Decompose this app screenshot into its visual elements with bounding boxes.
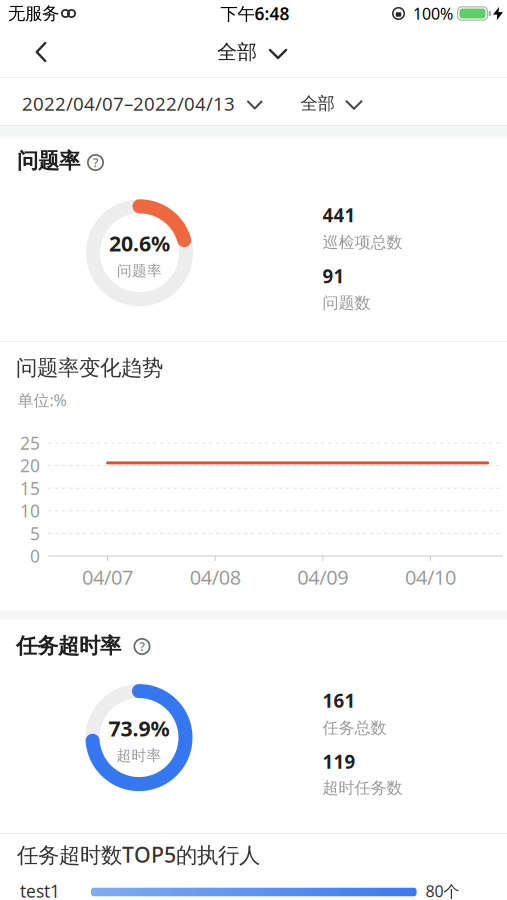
staticText: 问题数: [322, 293, 370, 313]
staticText: 0: [30, 544, 40, 567]
staticText: 100%: [413, 3, 453, 24]
staticText: 任务超时数TOP5的执行人: [17, 840, 260, 869]
button[interactable]: 返回: [25, 31, 57, 73]
staticText: 5: [30, 522, 40, 545]
staticText: 04/09: [297, 564, 348, 590]
button[interactable]: 全部: [217, 40, 286, 64]
staticText: 问题率: [17, 148, 80, 174]
staticText: 91: [322, 264, 344, 288]
staticText: 2022/04/07–2022/04/13: [22, 91, 235, 116]
staticText: 25: [20, 431, 40, 454]
button[interactable]: 全部: [300, 93, 361, 114]
staticText: 10: [20, 499, 40, 522]
button[interactable]: 2022/04/07–2022/04/13: [22, 91, 322, 116]
staticText: 单位:%: [17, 389, 66, 411]
staticText: 超时率: [116, 747, 161, 765]
staticText: 04/10: [405, 564, 456, 590]
staticText: 全部: [217, 40, 257, 64]
staticText: 超时任务数: [322, 778, 402, 798]
staticText: 问题率: [117, 262, 162, 280]
staticText: 20: [20, 454, 40, 477]
staticText: ?: [93, 154, 98, 170]
staticText: 441: [322, 203, 355, 227]
staticText: test1: [20, 879, 60, 900]
staticText: 161: [322, 688, 355, 713]
staticText: 问题率变化趋势: [16, 355, 163, 381]
staticText: 下午6:48: [220, 2, 289, 25]
staticText: 任务总数: [322, 718, 386, 738]
button[interactable]: 任务超时率说明: [133, 638, 150, 655]
staticText: 119: [322, 749, 355, 774]
staticText: 80个: [425, 880, 459, 900]
staticText: 无服务: [8, 3, 59, 24]
staticText: 巡检项总数: [322, 233, 402, 252]
staticText: 任务超时率: [16, 633, 121, 659]
staticText: 全部: [300, 93, 334, 114]
staticText: 20.6%: [109, 229, 170, 257]
staticText: 73.9%: [108, 714, 169, 742]
button[interactable]: 问题率说明: [87, 154, 104, 171]
staticText: 15: [20, 477, 40, 500]
staticText: 04/07: [82, 564, 133, 590]
staticText: 04/08: [190, 564, 241, 590]
staticText: ?: [139, 638, 144, 654]
